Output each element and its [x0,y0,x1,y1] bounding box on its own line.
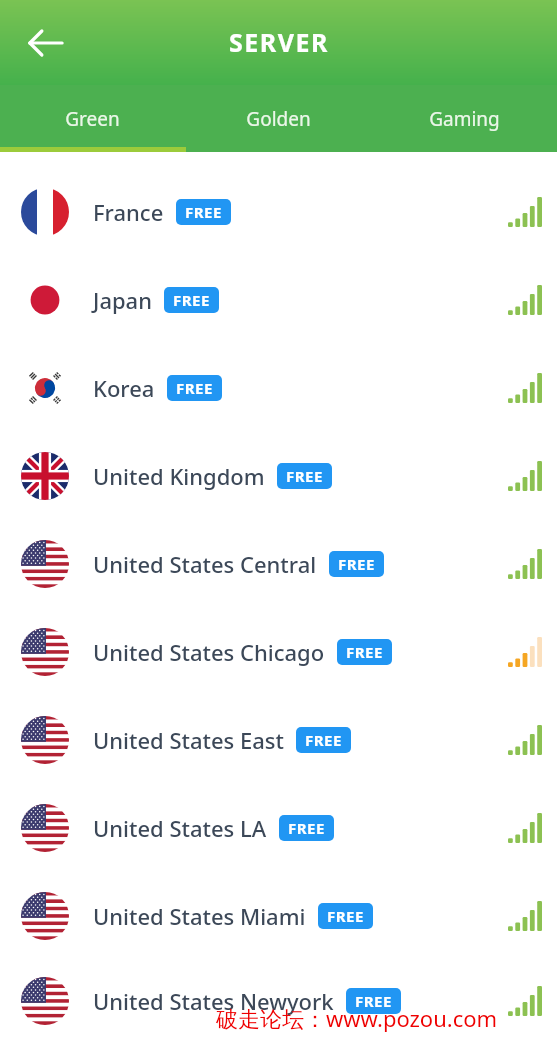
button[interactable]: United States Central [0,520,557,608]
staticText: United States Newyork [93,986,334,1016]
staticText: Japan [93,285,152,315]
button[interactable]: Japan [0,256,557,344]
staticText: United Kingdom [93,461,265,491]
button[interactable]: Green [0,85,185,152]
button[interactable]: Golden [185,85,371,152]
button[interactable]: United States Chicago [0,608,557,696]
staticText: United States Chicago [93,637,325,667]
staticText: FREE [286,466,323,486]
staticText: SERVER [229,25,329,59]
staticText: United States Central [93,549,317,579]
button[interactable]: France [0,152,557,256]
staticText: United States Miami [93,901,306,931]
staticText: Golden [246,106,311,132]
staticText: FREE [346,642,383,662]
staticText: United States East [93,725,284,755]
staticText: Korea [93,373,155,403]
staticText: FREE [288,818,325,838]
button[interactable]: Gaming [371,85,557,152]
button[interactable]: Korea [0,344,557,432]
button[interactable]: United States LA [0,784,557,872]
staticText: Green [65,106,120,132]
staticText: FREE [338,554,375,574]
staticText: FREE [176,378,213,398]
staticText: FREE [305,730,342,750]
staticText: Gaming [429,106,500,132]
button[interactable]: United States Newyork [0,960,557,1041]
button[interactable]: United Kingdom [0,432,557,520]
staticText: France [93,197,164,227]
staticText: FREE [327,906,364,926]
button[interactable]: United States Miami [0,872,557,960]
staticText: United States LA [93,813,267,843]
button[interactable]: Back [20,17,72,69]
staticText: FREE [185,202,222,222]
staticText: FREE [355,991,392,1011]
staticText: 破走论坛：www.pozou.com [216,1003,498,1033]
button[interactable]: United States East [0,696,557,784]
staticText: FREE [173,290,210,310]
